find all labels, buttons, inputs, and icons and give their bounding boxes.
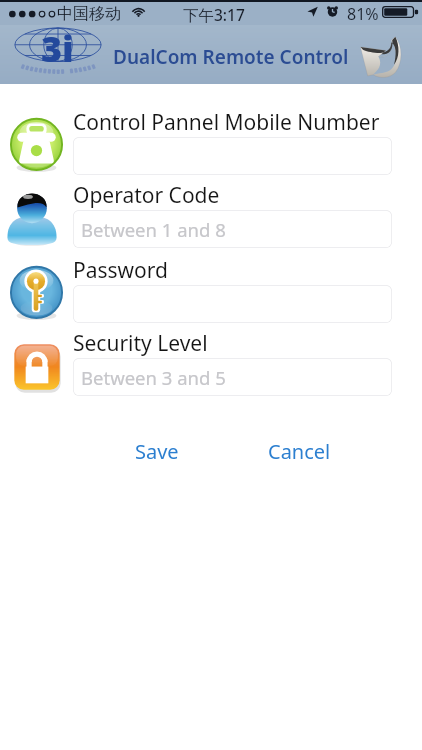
staticText: Control Pannel Mobile Number [73,108,380,137]
staticText: Security Level [73,329,208,358]
staticText: Between 1 and 8 [81,217,226,242]
staticText: Password [73,256,168,285]
staticText: Save [135,438,179,465]
staticText: Between 3 and 5 [81,365,226,390]
staticText: 下午3:17 [183,4,245,25]
button[interactable]: Back [353,31,409,83]
staticText: 3i [41,24,74,73]
staticText: Operator Code [73,181,220,210]
button[interactable] [73,137,392,175]
staticText: Cancel [268,438,331,465]
button[interactable]: Between 1 and 8 [73,210,392,248]
button[interactable]: Cancel [252,436,346,466]
button[interactable]: Between 3 and 5 [73,358,392,396]
button[interactable] [73,285,392,323]
staticText: 中国移动 [57,4,121,24]
button[interactable]: Save [110,436,204,466]
staticText: 81% [347,3,379,25]
staticText: DualCom Remote Control [113,44,349,70]
